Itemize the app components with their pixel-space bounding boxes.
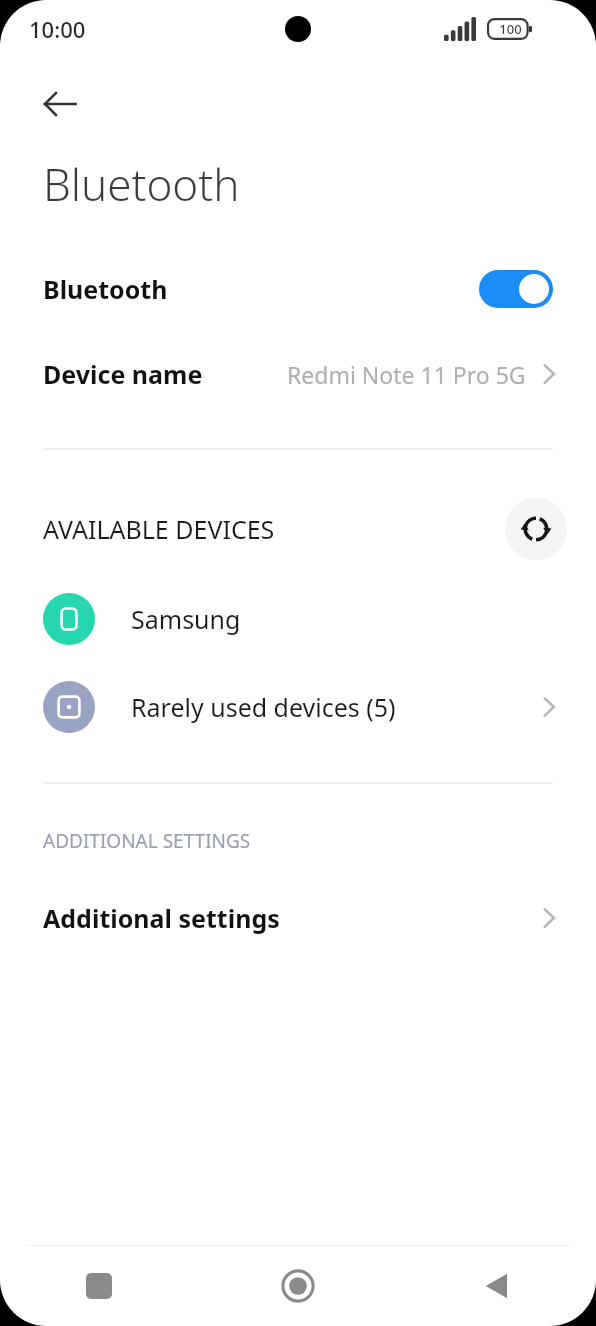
staticText: Bluetooth	[43, 154, 240, 214]
button[interactable]: Refresh	[505, 498, 567, 560]
button[interactable]: Device name	[0, 344, 596, 404]
staticText: Redmi Note 11 Pro 5G	[287, 359, 526, 390]
staticText: Rarely used devices (5)	[131, 690, 396, 724]
button[interactable]: Samsung	[0, 584, 596, 654]
staticText: Samsung	[131, 602, 241, 636]
staticText: Device name	[43, 357, 203, 391]
staticText: AVAILABLE DEVICES	[43, 512, 275, 546]
staticText: ADDITIONAL SETTINGS	[43, 828, 251, 854]
button[interactable]: Bluetooth	[0, 256, 596, 322]
button[interactable]: Home	[198, 1246, 397, 1326]
button[interactable]: Back	[397, 1246, 596, 1326]
staticText: Bluetooth	[43, 272, 168, 306]
button[interactable]: Back	[28, 72, 92, 136]
button[interactable]: Bluetooth toggle	[479, 270, 553, 308]
button[interactable]: Recents	[0, 1246, 198, 1326]
staticText: 10:00	[29, 14, 86, 44]
button[interactable]: Additional settings	[0, 886, 596, 950]
staticText: 100	[499, 20, 522, 38]
button[interactable]: Rarely used devices (5)	[0, 672, 596, 742]
staticText: Additional settings	[43, 901, 280, 935]
